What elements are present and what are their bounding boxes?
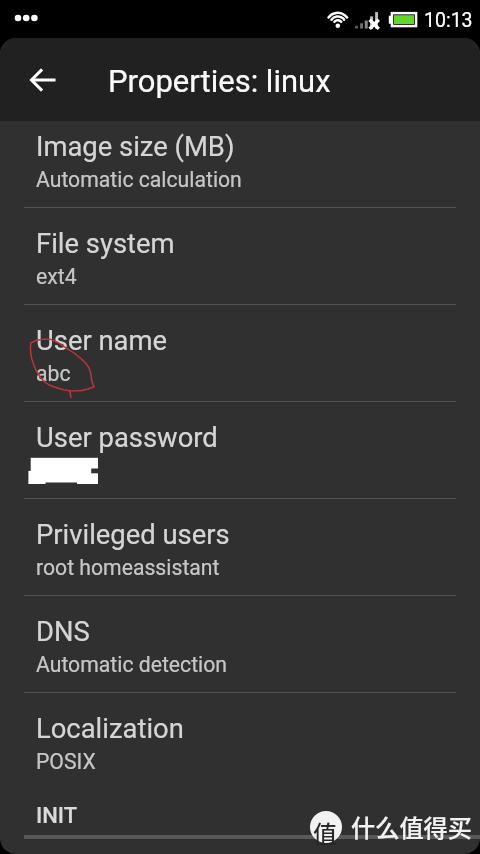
staticText: Properties: linux: [108, 63, 331, 99]
staticText: root homeassistant: [36, 555, 220, 580]
staticText: User password: [36, 422, 218, 454]
button[interactable]: Image size (MB): [0, 111, 480, 208]
staticText: Automatic detection: [36, 652, 228, 677]
staticText: ext4: [36, 264, 77, 289]
staticText: Automatic calculation: [36, 167, 242, 192]
staticText: 值: [313, 815, 337, 850]
button[interactable]: User name: [0, 305, 480, 402]
button[interactable]: Back: [19, 56, 67, 104]
staticText: Privileged users: [36, 519, 230, 551]
staticText: DNS: [36, 616, 90, 648]
button[interactable]: User password: [0, 402, 480, 499]
staticText: Image size (MB): [36, 131, 235, 163]
button[interactable]: DNS: [0, 596, 480, 693]
staticText: abc: [36, 361, 71, 386]
staticText: POSIX: [36, 749, 96, 774]
button[interactable]: File system: [0, 208, 480, 305]
staticText: INIT: [36, 803, 78, 829]
button[interactable]: Privileged users: [0, 499, 480, 596]
staticText: User name: [36, 325, 168, 357]
staticText: 什么值得买: [351, 809, 472, 844]
staticText: File system: [36, 228, 175, 260]
staticText: 10:13: [424, 9, 473, 32]
button[interactable]: Localization: [0, 693, 480, 790]
staticText: Localization: [36, 713, 184, 745]
